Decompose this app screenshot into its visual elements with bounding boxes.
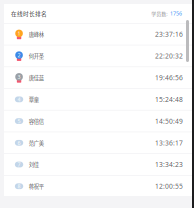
staticText: 13:36:17	[155, 138, 183, 147]
staticText: 刘佳	[29, 161, 39, 168]
staticText: 学员数:	[151, 10, 167, 17]
staticText: 蒋祝平	[29, 182, 44, 190]
staticText: 7	[18, 161, 21, 168]
button[interactable]: 2	[4, 45, 192, 66]
staticText: 19:46:56	[155, 73, 183, 82]
staticText: 唐佳蓝	[29, 74, 44, 81]
staticText: 15:24:48	[155, 95, 183, 104]
button[interactable]: 7	[4, 154, 192, 175]
staticText: 容倍信	[29, 117, 44, 125]
button[interactable]: 5	[4, 111, 192, 132]
staticText: 范广美	[29, 139, 44, 147]
staticText: 在线时长排名	[11, 9, 47, 18]
staticText: 8	[18, 183, 21, 190]
staticText: 覃童	[29, 95, 39, 103]
staticText: 5	[18, 117, 21, 125]
staticText: 23:37:16	[155, 30, 183, 39]
button[interactable]: 3	[4, 67, 192, 88]
staticText: 22:20:32	[155, 51, 183, 60]
button[interactable]: 6	[4, 132, 192, 153]
staticText: 1756	[170, 10, 182, 17]
button[interactable]: 4	[4, 89, 192, 110]
staticText: 何开圣	[29, 52, 44, 60]
staticText: 6	[18, 139, 21, 146]
staticText: 13:34:23	[155, 160, 183, 169]
staticText: 2	[18, 52, 21, 59]
staticText: 3	[18, 73, 21, 80]
staticText: 4	[18, 96, 21, 103]
staticText: 12:00:55	[155, 182, 183, 191]
staticText: 14:50:49	[155, 117, 183, 126]
staticText: 唐峰林	[29, 30, 44, 38]
staticText: 1	[18, 30, 21, 37]
button[interactable]: 1	[4, 24, 192, 45]
button[interactable]: 8	[4, 176, 192, 197]
